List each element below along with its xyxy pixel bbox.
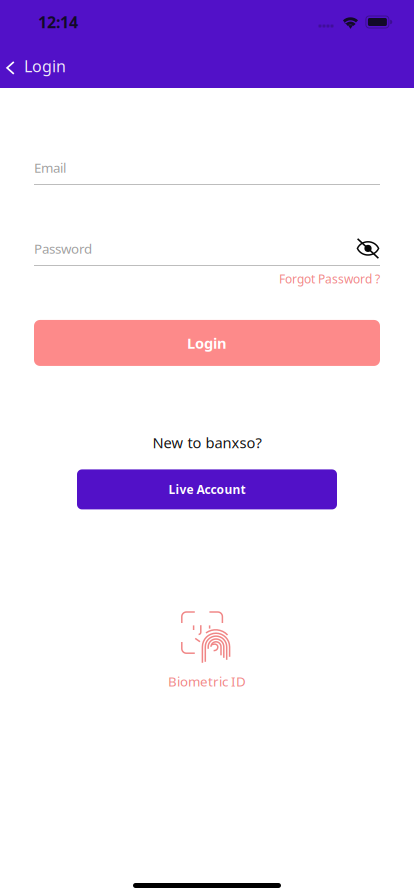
staticText: New to banxso? — [152, 433, 261, 452]
staticText: Password — [34, 240, 92, 257]
staticText: Forgot Password ? — [279, 271, 380, 287]
staticText: 12:14 — [38, 11, 78, 33]
staticText: Biometric ID — [168, 672, 246, 690]
button[interactable]: Forgot Password ? — [279, 266, 380, 289]
staticText: Live Account — [168, 481, 245, 497]
button[interactable]: Login — [34, 320, 380, 366]
staticText: Email — [34, 159, 66, 176]
button[interactable]: Biometric ID — [168, 611, 246, 690]
staticText: Login — [24, 55, 66, 77]
button[interactable]: Login — [0, 44, 120, 88]
button[interactable]: Show password — [356, 237, 380, 260]
button[interactable]: Live Account — [77, 469, 337, 509]
staticText: Login — [187, 333, 227, 353]
